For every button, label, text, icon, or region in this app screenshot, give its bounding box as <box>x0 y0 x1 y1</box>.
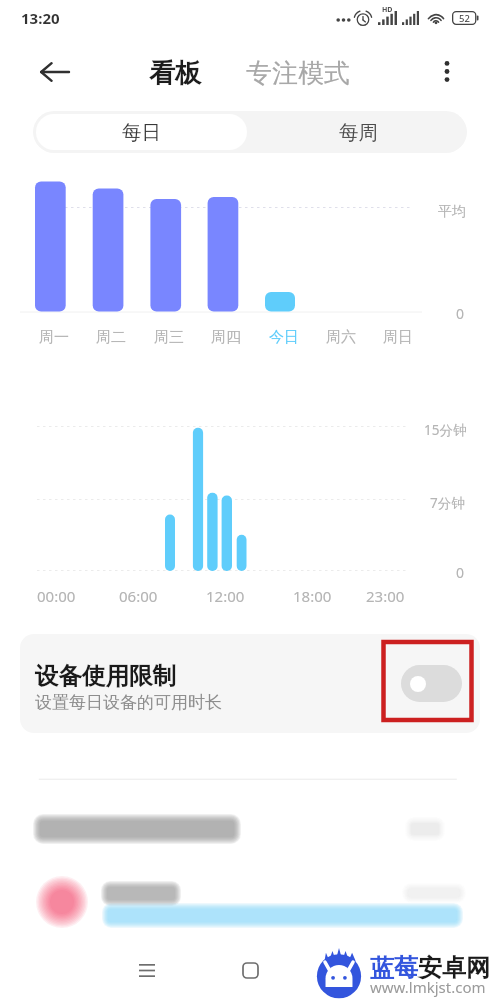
staticText: 周日 <box>383 328 413 347</box>
staticText: 安卓网 <box>418 953 490 983</box>
staticText: 周六 <box>326 328 356 347</box>
button[interactable]: 设备使用限制 <box>20 634 480 733</box>
button[interactable]: Recent apps <box>127 950 167 990</box>
staticText: 23:00 <box>366 586 405 606</box>
staticText: 周三 <box>154 328 184 347</box>
staticText: 每周 <box>339 120 378 145</box>
staticText: 06:00 <box>119 586 158 606</box>
button[interactable]: Device usage limit toggle <box>401 665 462 702</box>
button[interactable]: 专注模式 <box>246 57 350 90</box>
button[interactable]: 每周 <box>250 111 467 153</box>
staticText: 12:00 <box>206 586 245 606</box>
staticText: 0 <box>456 563 465 582</box>
staticText: 平均 <box>438 203 466 221</box>
button[interactable]: 每日 <box>36 114 247 150</box>
staticText: 每日 <box>122 120 161 145</box>
staticText: 今日 <box>269 328 299 347</box>
staticText: 周一 <box>39 328 69 347</box>
staticText: 设备使用限制 <box>35 661 176 691</box>
staticText: 15分钟 <box>424 421 467 439</box>
button[interactable]: Home <box>230 950 270 990</box>
staticText: 7分钟 <box>430 494 465 512</box>
staticText: 周二 <box>96 328 126 347</box>
staticText: 0 <box>456 304 465 323</box>
staticText: www.lmkjst.com <box>370 977 486 997</box>
staticText: 设置每日设备的可用时长 <box>35 692 222 713</box>
staticText: 周四 <box>211 328 241 347</box>
staticText: 52 <box>459 12 470 25</box>
staticText: 00:00 <box>37 586 76 606</box>
button[interactable]: 看板 <box>149 57 201 90</box>
staticText: 蓝莓 <box>370 953 418 983</box>
staticText: HD <box>382 5 393 15</box>
staticText: 18:00 <box>293 586 332 606</box>
staticText: 13:20 <box>21 8 60 28</box>
button[interactable]: More options <box>426 50 468 92</box>
button[interactable]: Back <box>32 50 76 94</box>
